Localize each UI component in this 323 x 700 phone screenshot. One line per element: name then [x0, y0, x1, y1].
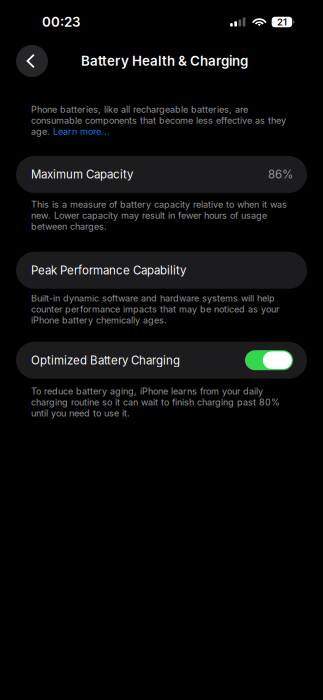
staticText: Built-in dynamic software and hardware s…: [31, 293, 279, 326]
button[interactable]: Maximum Capacity: [0, 156, 323, 193]
staticText: Phone batteries, like all rechargeable b…: [31, 104, 286, 137]
staticText: 00:23: [42, 14, 80, 30]
button[interactable]: Peak Performance Capability: [0, 252, 323, 289]
staticText: 21: [277, 16, 287, 28]
staticText: Battery Health & Charging: [81, 53, 248, 69]
staticText: Maximum Capacity: [31, 167, 133, 181]
staticText: 86%: [268, 167, 293, 181]
staticText: This is a measure of battery capacity re…: [31, 199, 287, 232]
button[interactable]: Back: [16, 45, 48, 77]
button[interactable]: Optimized Battery Charging: [0, 342, 323, 379]
staticText: Peak Performance Capability: [31, 263, 186, 277]
staticText: To reduce battery aging, iPhone learns f…: [31, 386, 280, 419]
staticText: Optimized Battery Charging: [31, 353, 180, 367]
